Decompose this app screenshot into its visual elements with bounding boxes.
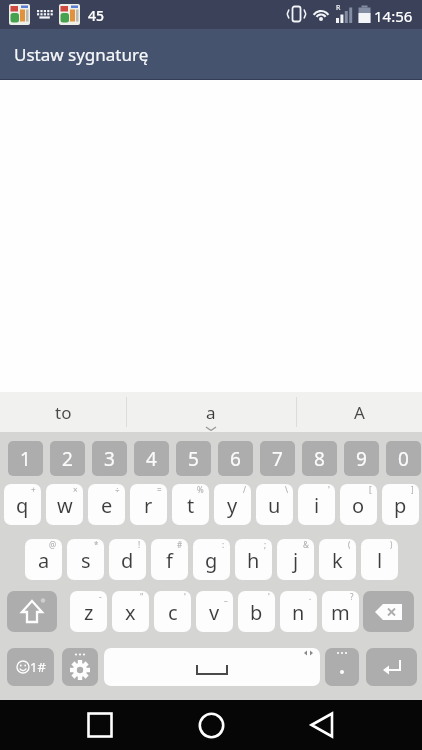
staticText: m [331,599,350,626]
staticText: [ [369,484,372,495]
button[interactable]: z [70,591,107,632]
staticText: a [206,401,216,424]
staticText: + [31,484,36,495]
button[interactable]: q [4,484,41,525]
staticText: / [243,484,246,495]
staticText: 0 [398,446,409,472]
button[interactable]: j [277,539,314,580]
button[interactable]: 8 [302,441,337,476]
button[interactable]: f [151,539,188,580]
button[interactable]: 5 [176,441,211,476]
button[interactable]: i [298,484,335,525]
button[interactable] [363,591,414,632]
staticText: y [227,492,238,519]
staticText: i [314,492,320,519]
staticText: 1# [30,658,46,676]
button[interactable]: k [319,539,356,580]
staticText: f [166,547,173,574]
staticText: t [187,492,195,519]
button[interactable] [325,648,359,686]
button[interactable]: t [172,484,209,525]
staticText: q [16,492,29,519]
button[interactable] [186,700,236,750]
staticText: h [247,547,260,574]
staticText: \ [285,484,288,495]
button[interactable] [62,648,98,686]
button[interactable]: Ustaw sygnaturę [0,29,422,79]
button[interactable]: 3 [92,441,127,476]
button[interactable]: 6 [218,441,253,476]
staticText: % [197,484,204,495]
button[interactable] [297,700,347,750]
button[interactable]: o [340,484,377,525]
button[interactable]: b [238,591,275,632]
button[interactable]: h [235,539,272,580]
staticText: 14:56 [374,6,413,26]
staticText: r [144,492,153,519]
staticText: w [57,492,73,519]
staticText: o [352,492,365,519]
button[interactable]: s [67,539,104,580]
button[interactable]: a [25,539,62,580]
staticText: ? [350,591,354,602]
staticText: 8 [314,446,325,472]
staticText: v [209,599,220,626]
staticText: ' [268,591,270,602]
button[interactable]: e [88,484,125,525]
button[interactable]: 9 [344,441,379,476]
button[interactable]: w [46,484,83,525]
button[interactable]: 2 [50,441,85,476]
button[interactable]: y [214,484,251,525]
staticText: j [293,547,299,574]
button[interactable]: a [126,392,296,432]
staticText: k [332,547,343,574]
staticText: : [222,539,225,550]
staticText: _ [224,591,228,602]
button[interactable]: u [256,484,293,525]
staticText: p [394,492,407,519]
staticText: # [177,539,183,550]
button[interactable]: 7 [260,441,295,476]
staticText: n [292,599,305,626]
staticText: ] [411,484,414,495]
staticText: @ [49,539,57,550]
button[interactable]: 0 [386,441,421,476]
button[interactable] [7,591,57,632]
staticText: * [94,539,99,550]
button[interactable]: v [196,591,233,632]
staticText: = [157,484,162,495]
button[interactable]: d [109,539,146,580]
staticText: × [73,484,78,495]
staticText: e [101,492,113,519]
staticText: ÷ [115,484,120,495]
button[interactable]: l [361,539,398,580]
button[interactable]: x [112,591,149,632]
button[interactable] [75,700,125,750]
button[interactable]: r [130,484,167,525]
button[interactable]: 4 [134,441,169,476]
staticText: d [121,547,134,574]
staticText: z [84,599,94,626]
button[interactable]: to [0,392,126,432]
staticText: 1 [20,446,31,472]
button[interactable]: 1# [7,648,54,686]
staticText: 7 [272,446,283,472]
staticText: ' [328,484,330,495]
button[interactable]: n [280,591,317,632]
staticText: . [309,591,312,602]
button[interactable]: c [154,591,191,632]
staticText: 3 [104,446,115,472]
staticText: - [99,591,102,602]
button[interactable]: 1 [8,441,43,476]
staticText: 4 [146,446,157,472]
button[interactable]: A [296,392,422,432]
button[interactable]: p [382,484,419,525]
staticText: ) [390,539,393,550]
staticText: A [354,401,365,424]
staticText: u [268,492,281,519]
button[interactable] [104,648,320,686]
staticText: s [81,547,91,574]
button[interactable]: m [322,591,359,632]
button[interactable] [366,648,417,686]
button[interactable]: g [193,539,230,580]
